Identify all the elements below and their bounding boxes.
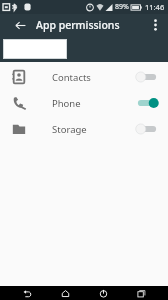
staticText: Storage [52, 123, 87, 136]
button[interactable]: Contacts permission toggle [132, 67, 162, 87]
button[interactable]: Phone [0, 90, 168, 116]
button[interactable]: Storage [0, 116, 168, 142]
button[interactable]: Back [10, 15, 30, 35]
button[interactable]: Search field [3, 39, 67, 59]
button[interactable]: Contacts [0, 64, 168, 90]
button[interactable]: Power [92, 286, 114, 300]
button[interactable]: Recent apps [130, 286, 152, 300]
button[interactable]: Back [16, 286, 38, 300]
button[interactable]: Storage permission toggle [132, 119, 162, 139]
button[interactable]: Home [54, 286, 76, 300]
staticText: Phone [52, 97, 81, 110]
staticText: 11:46 [145, 2, 165, 12]
staticText: 89% [115, 2, 129, 12]
button[interactable]: More options [146, 16, 164, 34]
staticText: App permissions [36, 18, 120, 32]
button[interactable]: Phone permission toggle [132, 93, 162, 113]
staticText: Contacts [52, 71, 91, 84]
